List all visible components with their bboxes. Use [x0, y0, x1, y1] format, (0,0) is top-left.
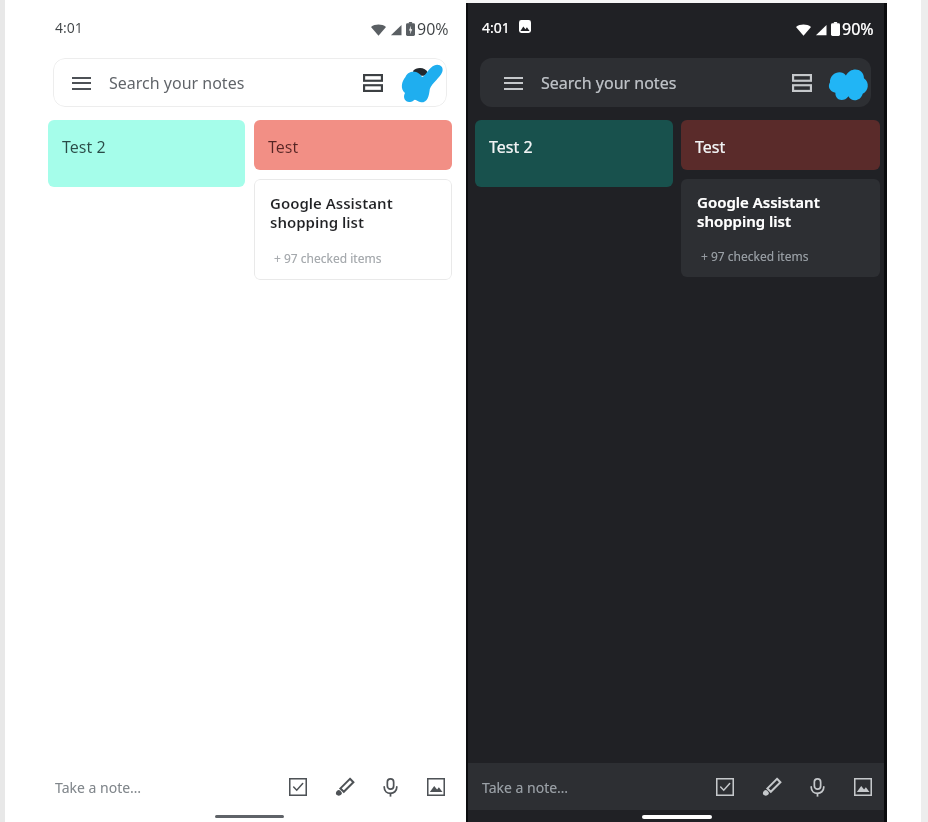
button[interactable]: Account — [399, 62, 445, 104]
staticText: Test — [268, 136, 299, 158]
staticText: Google Assistant shopping list — [270, 193, 393, 232]
staticText: + 97 checked items — [274, 250, 382, 266]
button[interactable]: New voice note — [374, 771, 406, 803]
staticText: 90% — [842, 18, 874, 40]
button[interactable]: New voice note — [801, 771, 833, 803]
staticText: 4:01 — [482, 18, 510, 37]
staticText: Take a note… — [55, 778, 142, 797]
button[interactable]: Account — [827, 61, 869, 104]
staticText: Test 2 — [62, 136, 106, 158]
button[interactable]: Open navigation drawer — [53, 58, 447, 107]
button[interactable]: Google Assistant shopping list — [254, 179, 452, 280]
button[interactable]: New note with image — [420, 771, 452, 803]
button[interactable]: New drawing — [328, 771, 360, 803]
staticText: 90% — [417, 18, 449, 40]
button[interactable]: New list — [709, 771, 741, 803]
button[interactable]: New list — [282, 771, 314, 803]
staticText: Search your notes — [541, 72, 677, 94]
button[interactable]: Open navigation drawer — [492, 62, 534, 104]
button[interactable]: Toggle list view — [353, 63, 393, 103]
staticText: Search your notes — [109, 72, 245, 94]
button[interactable]: Test — [254, 120, 452, 170]
button[interactable]: Open navigation drawer — [60, 62, 102, 104]
button[interactable]: New drawing — [755, 771, 787, 803]
button[interactable]: New note with image — [847, 771, 879, 803]
staticText: + 97 checked items — [701, 248, 809, 264]
staticText: 4:01 — [55, 18, 83, 37]
staticText: Google Assistant shopping list — [697, 192, 820, 231]
button[interactable]: Open navigation drawer — [480, 58, 871, 107]
staticText: Test — [695, 136, 726, 158]
button[interactable]: Test — [681, 120, 880, 170]
button[interactable]: Test 2 — [475, 120, 673, 187]
button[interactable]: Test 2 — [48, 120, 245, 187]
button[interactable]: Toggle list view — [782, 63, 822, 103]
staticText: Take a note… — [482, 778, 569, 797]
staticText: Test 2 — [489, 136, 533, 158]
button[interactable]: Google Assistant shopping list — [681, 179, 880, 277]
